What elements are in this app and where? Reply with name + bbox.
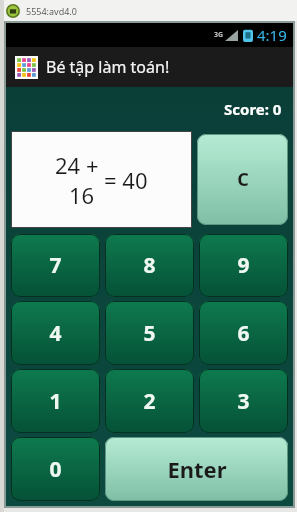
button[interactable]: Bé tập làm toán! [6,47,293,87]
button[interactable]: 0 [11,437,100,501]
staticText: 16 [69,180,95,210]
staticText: 6 [237,319,250,348]
staticText: Bé tập làm toán! [46,56,170,78]
button[interactable]: C [197,134,288,225]
staticText: 3 [237,387,250,416]
button[interactable]: 5 [105,301,194,365]
staticText: 8 [143,251,156,280]
staticText: 5 [143,319,156,348]
button[interactable]: 3 [199,369,288,433]
staticText: 4 [49,319,62,348]
button[interactable]: 2 [105,369,194,433]
staticText: 0 [49,455,62,484]
staticText: 1 [49,387,62,416]
button[interactable]: 9 [199,234,288,297]
button[interactable]: 1 [11,369,100,433]
button[interactable]: 7 [11,234,100,297]
staticText: = 40 [104,165,148,195]
button[interactable]: 4 [11,301,100,365]
staticText: 9 [237,251,250,280]
button[interactable]: Enter [105,437,288,501]
staticText: C [237,167,249,192]
staticText: 3G [214,30,224,40]
button[interactable]: 6 [199,301,288,365]
staticText: Enter [167,454,227,484]
staticText: 7 [49,251,62,280]
staticText: Score: 0 [224,99,282,119]
staticText: 5554:avd4.0 [26,5,77,17]
staticText: 24 + [55,150,99,180]
staticText: 2 [143,387,156,416]
staticText: 4:19 [257,25,287,45]
button[interactable]: 8 [105,234,194,297]
